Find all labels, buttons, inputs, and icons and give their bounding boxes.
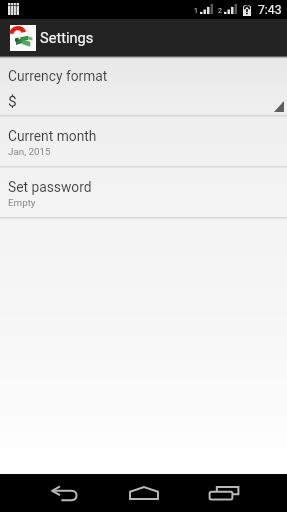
staticText: Set password: [8, 179, 92, 195]
staticText: Currency format: [8, 68, 108, 84]
button[interactable]: Set password: [0, 168, 287, 217]
staticText: 7:43: [258, 3, 282, 17]
button[interactable]: Currency format: [0, 56, 287, 115]
button[interactable]: Back: [37, 479, 93, 507]
staticText: Settings: [40, 29, 94, 46]
staticText: Jan, 2015: [8, 146, 51, 157]
staticText: 2: [218, 7, 222, 15]
staticText: Current month: [8, 128, 97, 144]
button[interactable]: Home: [116, 479, 172, 507]
button[interactable]: Recent apps: [196, 479, 252, 507]
staticText: 1: [194, 7, 198, 15]
button[interactable]: Current month: [0, 117, 287, 166]
staticText: $: [8, 92, 17, 110]
staticText: Empty: [8, 197, 36, 208]
